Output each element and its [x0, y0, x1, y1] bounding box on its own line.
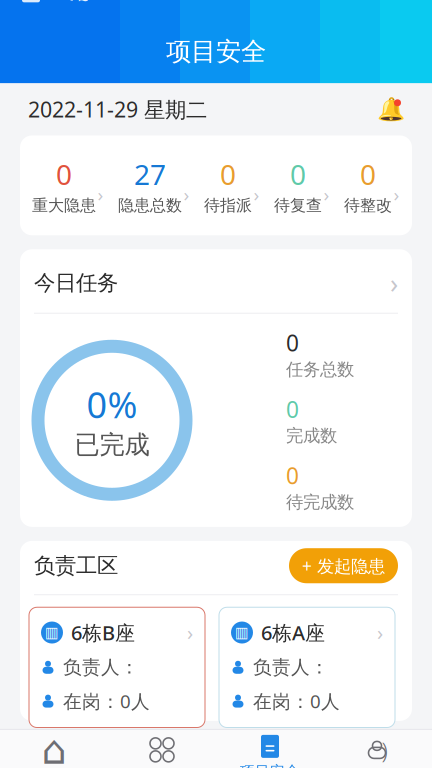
- staticText: + 发起隐患: [302, 554, 385, 577]
- staticText: 6栋B座: [71, 619, 135, 646]
- staticText: 待整改: [344, 196, 392, 215]
- staticText: 0: [56, 155, 72, 193]
- button[interactable]: 今日任务: [20, 249, 412, 313]
- button[interactable]: 通知: [378, 96, 404, 122]
- staticText: 0%: [86, 380, 137, 428]
- staticText: 待复查: [274, 196, 322, 215]
- staticText: 0: [290, 155, 306, 193]
- staticText: 0: [286, 394, 299, 424]
- button[interactable]: 项目安全: [216, 729, 324, 768]
- staticText: 2022-11-29 星期二: [28, 95, 207, 123]
- staticText: 任务总数: [286, 359, 354, 380]
- staticText: 负责工区: [34, 553, 118, 579]
- staticText: 0: [286, 460, 299, 491]
- staticText: ›: [323, 182, 329, 207]
- staticText: ›: [97, 182, 103, 207]
- staticText: ›: [187, 619, 193, 646]
- button[interactable]: 首页: [0, 729, 108, 768]
- staticText: ): [381, 735, 387, 765]
- staticText: 27: [134, 155, 166, 193]
- button[interactable]: 0: [32, 153, 104, 217]
- staticText: 负责人：: [253, 656, 329, 679]
- staticText: 🔔: [377, 96, 405, 122]
- button[interactable]: + 发起隐患: [289, 548, 398, 583]
- staticText: 隐患总数: [118, 196, 182, 215]
- staticText: 0: [286, 328, 299, 358]
- staticText: ›: [377, 619, 383, 646]
- staticText: 项目安全: [240, 762, 300, 768]
- staticText: ›: [393, 182, 399, 207]
- staticText: 在岗：0人: [253, 689, 340, 713]
- staticText: 6栋A座: [261, 619, 325, 646]
- staticText: ›: [253, 182, 259, 207]
- staticText: 在岗：0人: [63, 689, 150, 713]
- staticText: ›: [390, 265, 398, 301]
- staticText: ▥: [235, 624, 249, 641]
- button[interactable]: 0: [274, 153, 330, 217]
- staticText: 待指派: [204, 196, 252, 215]
- staticText: ≋: [77, 0, 89, 4]
- staticText: 已完成: [74, 429, 149, 460]
- staticText: 重大隐患: [32, 196, 96, 215]
- staticText: ›: [183, 182, 189, 207]
- button[interactable]: 0: [204, 153, 260, 217]
- button[interactable]: 0: [344, 153, 400, 217]
- button[interactable]: 通讯录: [324, 729, 432, 768]
- staticText: 项目安全: [166, 36, 266, 67]
- staticText: ▥: [45, 624, 59, 641]
- staticText: ⌂: [41, 727, 66, 768]
- staticText: 完成数: [286, 425, 337, 446]
- staticText: 今日任务: [34, 270, 118, 296]
- staticText: 待完成数: [286, 492, 354, 513]
- button[interactable]: ▥: [29, 607, 205, 727]
- staticText: 负责人：: [63, 656, 139, 679]
- staticText: 0: [220, 155, 236, 193]
- staticText: 0: [360, 155, 376, 193]
- button[interactable]: 27: [118, 153, 190, 217]
- button[interactable]: ▥: [219, 607, 395, 727]
- button[interactable]: 应用: [108, 729, 216, 768]
